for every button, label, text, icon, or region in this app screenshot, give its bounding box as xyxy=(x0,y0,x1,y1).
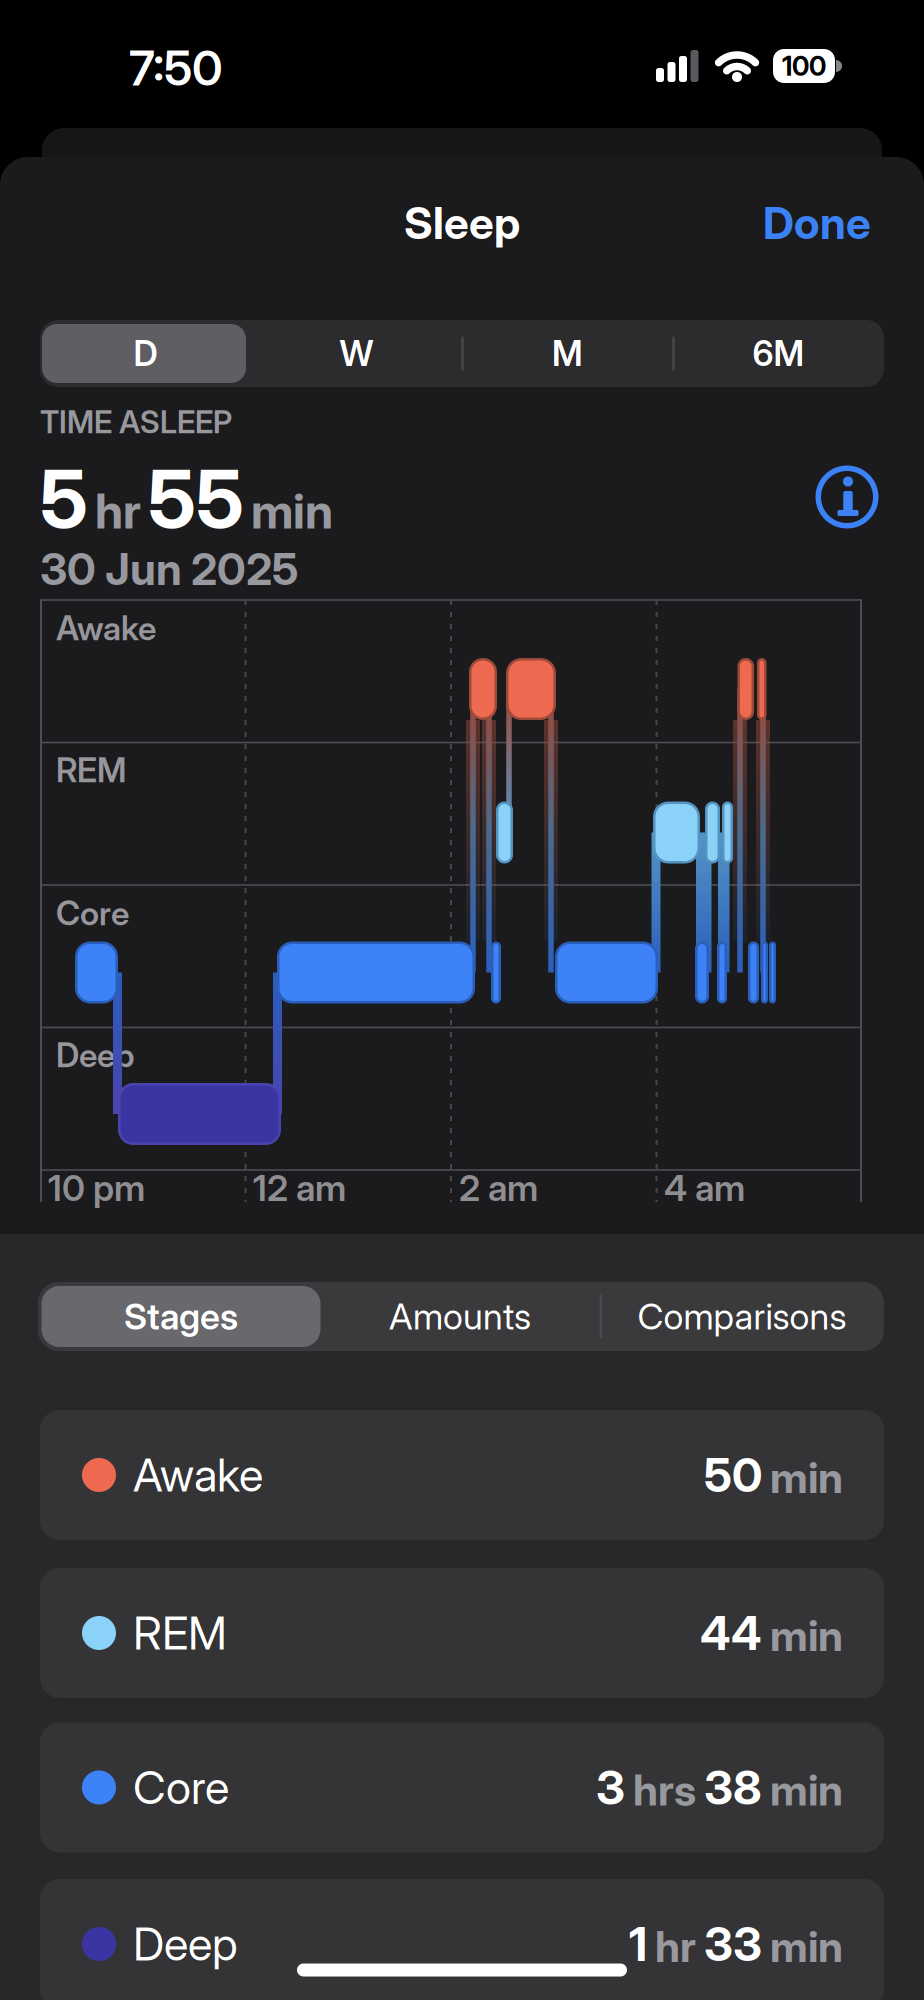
staticText: REM xyxy=(133,1606,227,1660)
staticText: REM xyxy=(56,750,126,790)
staticText: Stages xyxy=(124,1295,238,1338)
button[interactable]: Comparisons xyxy=(577,1286,907,1347)
staticText: Amounts xyxy=(389,1295,531,1338)
staticText: Core xyxy=(56,893,129,933)
button[interactable]: D xyxy=(44,324,247,383)
button[interactable]: Deep xyxy=(40,1879,884,2000)
staticText: 2 am xyxy=(459,1166,538,1210)
button[interactable]: Stages xyxy=(41,1286,320,1347)
staticText: hr xyxy=(95,482,141,540)
staticText: Core xyxy=(133,1760,229,1815)
button[interactable]: Core xyxy=(40,1722,884,1852)
staticText: min xyxy=(770,1764,843,1816)
staticText: 10 pm xyxy=(48,1166,145,1210)
staticText: 44 xyxy=(700,1605,762,1661)
staticText: 7:50 xyxy=(129,39,223,97)
button[interactable]: REM xyxy=(40,1568,884,1698)
staticText: 6M xyxy=(752,332,804,374)
button[interactable]: 6M xyxy=(677,324,880,383)
staticText: Awake xyxy=(56,608,156,648)
staticText: hr xyxy=(655,1921,696,1972)
staticText: Comparisons xyxy=(637,1295,846,1338)
button[interactable]: About Time Asleep xyxy=(815,465,878,528)
staticText: Awake xyxy=(133,1448,263,1502)
staticText: 1 xyxy=(629,1916,647,1972)
staticText: 4 am xyxy=(664,1166,745,1210)
staticText: 30 Jun 2025 xyxy=(40,542,298,596)
button[interactable]: M xyxy=(466,324,669,383)
button[interactable]: Done xyxy=(671,196,871,250)
staticText: Deep xyxy=(56,1035,135,1075)
staticText: Deep xyxy=(133,1917,238,1971)
staticText: Sleep xyxy=(404,196,520,250)
staticText: 12 am xyxy=(253,1166,346,1210)
staticText: Done xyxy=(763,196,871,250)
staticText: W xyxy=(339,332,373,374)
staticText: hrs xyxy=(633,1764,696,1816)
staticText: TIME ASLEEP xyxy=(40,403,232,440)
staticText: 33 xyxy=(704,1916,762,1972)
button[interactable]: Awake xyxy=(40,1410,884,1540)
staticText: 100 xyxy=(782,50,826,82)
staticText: 55 xyxy=(148,450,244,547)
staticText: min xyxy=(770,1921,843,1972)
staticText: M xyxy=(552,332,583,374)
staticText: 38 xyxy=(704,1759,762,1816)
staticText: min xyxy=(251,482,333,540)
button[interactable]: W xyxy=(255,324,458,383)
staticText: 5 xyxy=(40,450,88,547)
staticText: 50 xyxy=(704,1447,762,1503)
staticText: min xyxy=(770,1610,843,1661)
button[interactable]: Amounts xyxy=(325,1286,595,1347)
staticText: D xyxy=(133,332,157,374)
staticText: 3 xyxy=(596,1759,625,1816)
staticText: min xyxy=(770,1452,843,1503)
